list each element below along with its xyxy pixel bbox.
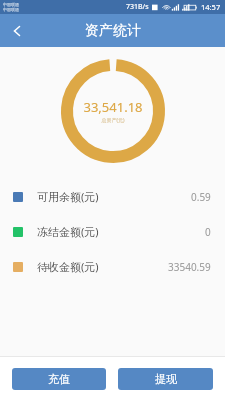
staticText: 33,541.18 [83,98,143,116]
staticText: 14:57 [201,2,221,12]
staticText: 充值 [48,372,70,386]
staticText: 总资产(元) [101,117,125,124]
staticText: 中国联通 [3,7,19,12]
button[interactable]: 冻结金额(元) [0,214,225,249]
staticText: 0.59 [191,190,211,204]
staticText: 0 [205,225,211,239]
staticText: 33540.59 [168,260,211,274]
button[interactable]: 提现 [118,368,213,390]
staticText: 731B/s [126,2,149,12]
staticText: 可用余额(元) [37,189,99,204]
button[interactable]: 充值 [12,368,106,390]
staticText: 待收金额(元) [37,259,99,274]
staticText: 提现 [155,372,177,386]
button[interactable]: 待收金额(元) [0,249,225,284]
button[interactable]: Back [0,14,34,47]
staticText: 资产统计 [85,22,141,40]
button[interactable]: 可用余额(元) [0,179,225,214]
staticText: 冻结金额(元) [37,224,99,239]
staticText: 中国联通 [3,2,19,7]
